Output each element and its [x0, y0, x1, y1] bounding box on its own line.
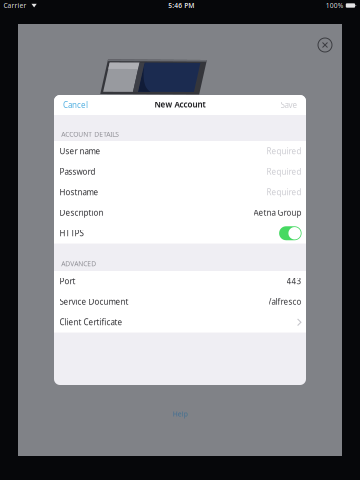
button[interactable]: Client Certificate — [54, 312, 306, 332]
staticText: Carrier — [3, 1, 26, 10]
staticText: Save — [280, 100, 297, 110]
button[interactable]: Save — [280, 95, 297, 115]
staticText: New Account — [154, 99, 205, 110]
staticText: Required — [267, 187, 302, 197]
staticText: ADVANCED — [61, 259, 96, 268]
staticText: Description — [60, 207, 104, 218]
staticText: Client Certificate — [60, 317, 123, 327]
button[interactable]: Cancel — [63, 95, 88, 115]
staticText: HTTPS — [60, 228, 84, 238]
staticText: Required — [267, 166, 302, 177]
staticText: Password — [60, 166, 96, 177]
button[interactable]: Close — [315, 35, 335, 55]
staticText: 443 — [287, 276, 302, 286]
button[interactable]: HTTPS — [54, 223, 306, 243]
staticText: 100% — [326, 1, 344, 10]
staticText: Cancel — [63, 100, 88, 110]
staticText: Port — [60, 276, 76, 286]
staticText: 5:46 PM — [168, 1, 194, 10]
staticText: Service Document — [60, 296, 129, 307]
staticText: /alfresco — [269, 296, 302, 307]
staticText: Aetna Group — [254, 207, 302, 218]
staticText: Required — [267, 146, 302, 156]
staticText: Help — [172, 410, 187, 418]
button[interactable]: Help — [165, 409, 195, 419]
staticText: User name — [60, 146, 101, 156]
staticText: ACCOUNT DETAILS — [61, 130, 119, 138]
staticText: Hostname — [60, 187, 99, 197]
